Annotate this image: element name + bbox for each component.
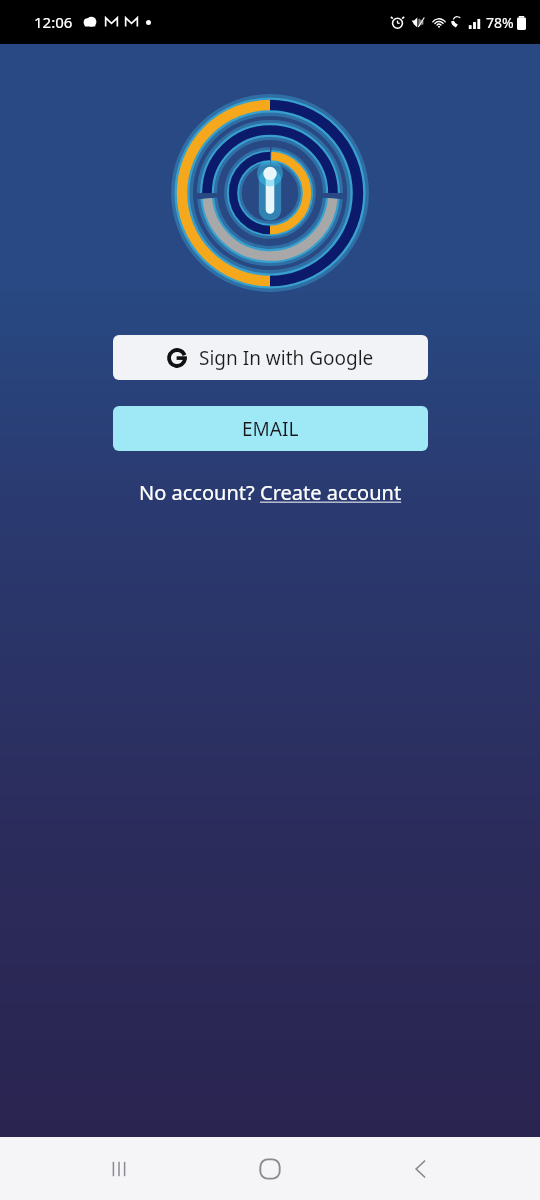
button[interactable]: Recent apps bbox=[87, 1137, 151, 1200]
staticText: EMAIL bbox=[242, 416, 299, 442]
button[interactable]: Sign In with Google bbox=[113, 335, 428, 380]
button[interactable]: EMAIL bbox=[113, 406, 428, 451]
staticText: 78% bbox=[486, 13, 514, 32]
button[interactable]: Home bbox=[238, 1137, 302, 1200]
button[interactable]: Create account bbox=[260, 479, 402, 506]
staticText: No account? bbox=[139, 479, 260, 506]
staticText: 12:06 bbox=[34, 12, 73, 32]
staticText: Sign In with Google bbox=[199, 345, 374, 371]
staticText: Create account bbox=[260, 479, 402, 506]
button[interactable]: Back bbox=[389, 1137, 453, 1200]
